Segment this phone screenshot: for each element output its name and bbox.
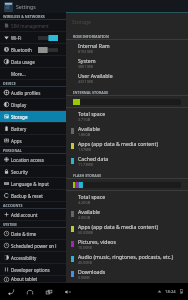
staticText: Audio profiles xyxy=(11,90,66,96)
staticText: Scheduled power on l xyxy=(11,243,66,249)
staticText: 11.73MB xyxy=(78,162,93,167)
button[interactable]: Total space xyxy=(66,108,188,123)
staticText: Wi-Fi xyxy=(11,35,38,41)
staticText: SYSTEM xyxy=(3,222,17,227)
staticText: ROM INFORMATION xyxy=(73,34,109,39)
staticText: Audio (music, ringtones, podcasts, etc.) xyxy=(78,253,174,260)
staticText: Add account xyxy=(11,212,66,218)
staticText: Available xyxy=(78,208,100,215)
button[interactable]: Bluetooth xyxy=(0,44,66,55)
staticText: DEVICE xyxy=(3,81,16,86)
button[interactable]: Internal Ram xyxy=(66,40,188,55)
staticText: Display xyxy=(11,102,66,108)
staticText: 60.00MB xyxy=(78,230,93,235)
button[interactable]: About tablet xyxy=(0,276,66,282)
staticText: User Available xyxy=(78,72,113,79)
staticText: 10.00KB xyxy=(78,245,92,250)
button[interactable]: Data usage xyxy=(0,56,66,67)
button[interactable]: Available xyxy=(66,206,188,221)
staticText: 3.71GB xyxy=(78,117,91,122)
button[interactable]: Display xyxy=(0,99,66,110)
staticText: Cached data xyxy=(78,155,109,162)
staticText: Location access xyxy=(11,157,66,163)
button[interactable]: Available xyxy=(66,123,188,138)
staticText: About tablet xyxy=(11,276,66,282)
staticText: ACCOUNTS xyxy=(3,203,23,208)
button[interactable]: Back xyxy=(5,286,16,297)
button[interactable]: Total space xyxy=(66,191,188,206)
staticText: Apps (app data & media content) xyxy=(78,140,158,147)
staticText: Available xyxy=(78,125,100,132)
button[interactable]: Recent apps xyxy=(43,286,54,297)
staticText: 8192 MB xyxy=(78,49,93,54)
staticText: 40.00KB xyxy=(78,260,92,265)
button[interactable]: Pictures, videos xyxy=(66,236,188,251)
staticText: Backup & reset xyxy=(11,193,66,199)
staticText: Downloads xyxy=(78,268,106,275)
staticText: Security xyxy=(11,169,66,175)
staticText: 4.00GB xyxy=(78,215,91,220)
staticText: Apps xyxy=(11,138,66,144)
staticText: 3801 MB xyxy=(78,64,93,69)
button[interactable]: Accessibility xyxy=(0,252,66,263)
staticText: Battery xyxy=(11,126,66,132)
staticText: Total space xyxy=(78,110,106,117)
staticText: Internal Ram xyxy=(78,42,110,49)
button[interactable]: Backup & reset xyxy=(0,190,66,201)
button[interactable]: Downloads xyxy=(66,266,188,281)
staticText: Storage xyxy=(11,114,66,120)
button[interactable]: Storage xyxy=(0,111,66,122)
staticText: Date & time xyxy=(11,231,66,237)
staticText: FLASH STORAGE xyxy=(73,173,102,178)
staticText: Developer options xyxy=(11,267,66,273)
staticText: Data usage xyxy=(11,59,66,65)
button[interactable]: More... xyxy=(0,68,66,79)
staticText: Accessibility xyxy=(11,255,66,261)
staticText: More... xyxy=(11,71,66,77)
button[interactable]: Apps (app data & media content) xyxy=(66,221,188,236)
staticText: SIM management xyxy=(11,23,66,29)
button[interactable]: System xyxy=(66,55,188,70)
staticText: 0.00KB xyxy=(78,275,90,280)
staticText: WIRELESS & NETWORKS xyxy=(3,14,45,19)
staticText: 4331 MB xyxy=(78,79,93,84)
staticText: Storage xyxy=(72,18,91,25)
button[interactable]: Security xyxy=(0,166,66,177)
button[interactable]: Date & time xyxy=(0,228,66,239)
staticText: Apps (app data & media content) xyxy=(78,223,158,230)
button[interactable]: Audio (music, ringtones, podcasts, etc.) xyxy=(66,251,188,266)
button[interactable]: Apps xyxy=(0,135,66,146)
staticText: 1.86GB xyxy=(78,132,91,137)
button[interactable]: User Available xyxy=(66,70,188,85)
button[interactable]: Audio profiles xyxy=(0,87,66,98)
staticText: Settings xyxy=(16,3,36,10)
button[interactable]: Scheduled power on l xyxy=(0,240,66,251)
staticText: 18:24 xyxy=(165,289,176,295)
button[interactable]: Volume down xyxy=(62,286,73,297)
button[interactable]: Add account xyxy=(0,209,66,220)
button[interactable]: Location access xyxy=(0,154,66,165)
staticText: 4.20GB xyxy=(78,200,91,205)
button[interactable]: Apps (app data & media content) xyxy=(66,138,188,153)
staticText: 1.57MB xyxy=(78,147,91,152)
button[interactable]: Home xyxy=(24,286,35,297)
staticText: Language & input xyxy=(11,181,66,187)
staticText: Pictures, videos xyxy=(78,238,116,245)
staticText: Total space xyxy=(78,193,106,200)
button[interactable]: Developer options xyxy=(0,264,66,275)
button[interactable]: Cached data xyxy=(66,153,188,168)
staticText: PERSONAL xyxy=(3,148,22,153)
button[interactable]: Settings xyxy=(4,0,66,13)
staticText: System xyxy=(78,57,96,64)
button[interactable]: Battery xyxy=(0,123,66,134)
button[interactable]: SIM management xyxy=(0,20,66,31)
staticText: Bluetooth xyxy=(11,47,38,53)
button[interactable]: Language & input xyxy=(0,178,66,189)
button[interactable]: Wi-Fi xyxy=(0,32,66,43)
staticText: INTERNAL STORAGE xyxy=(73,90,109,95)
